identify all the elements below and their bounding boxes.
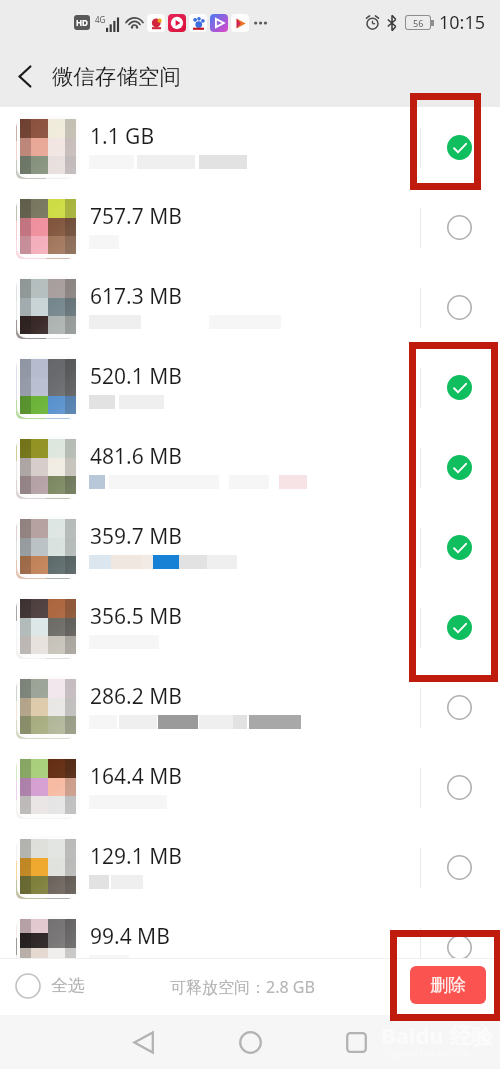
staticText: 4G — [95, 14, 106, 25]
button[interactable]: 757.7 MB — [0, 187, 500, 267]
button[interactable]: Home — [226, 1018, 274, 1066]
staticText: 757.7 MB — [90, 202, 182, 231]
button[interactable]: 删除 — [410, 966, 486, 1004]
staticText: 可释放空间：2.8 GB — [170, 976, 315, 998]
staticText: 微信存储空间 — [52, 63, 181, 90]
staticText: 1.1 GB — [90, 122, 155, 151]
button[interactable]: Not selected — [447, 775, 472, 800]
staticText: Baidu 经验 — [381, 1020, 494, 1050]
staticText: 359.7 MB — [90, 522, 182, 551]
staticText: 356.5 MB — [90, 602, 182, 631]
staticText: 481.6 MB — [90, 442, 182, 471]
staticText: 129.1 MB — [90, 842, 182, 871]
button[interactable]: Not selected — [447, 295, 472, 320]
button[interactable]: Recents — [332, 1018, 380, 1066]
staticText: 10:15 — [439, 10, 486, 35]
button[interactable]: 481.6 MB — [0, 427, 500, 507]
staticText: 全选 — [51, 975, 85, 996]
button[interactable]: 164.4 MB — [0, 747, 500, 827]
button[interactable]: Selected — [447, 455, 472, 480]
staticText: 164.4 MB — [90, 762, 182, 791]
button[interactable]: 129.1 MB — [0, 827, 500, 907]
staticText: 520.1 MB — [90, 362, 182, 391]
button[interactable]: Not selected — [447, 855, 472, 880]
button[interactable]: Not selected — [447, 695, 472, 720]
staticText: 删除 — [430, 974, 466, 997]
button[interactable]: 617.3 MB — [0, 267, 500, 347]
button[interactable]: Back — [119, 1018, 167, 1066]
button[interactable]: 359.7 MB — [0, 507, 500, 587]
button[interactable]: Not selected — [447, 215, 472, 240]
button[interactable]: 520.1 MB — [0, 347, 500, 427]
staticText: 617.3 MB — [90, 282, 182, 311]
button[interactable]: 286.2 MB — [0, 667, 500, 747]
staticText: 99.4 MB — [90, 922, 170, 951]
button[interactable]: Selected — [447, 375, 472, 400]
button[interactable]: 全选 — [15, 972, 95, 999]
button[interactable]: Selected — [447, 135, 472, 160]
button[interactable]: 356.5 MB — [0, 587, 500, 667]
button[interactable]: Back — [0, 45, 50, 107]
button[interactable]: 99.4 MB — [0, 907, 500, 958]
staticText: HD — [76, 17, 88, 28]
button[interactable]: Selected — [447, 535, 472, 560]
button[interactable]: Not selected — [447, 935, 472, 958]
button[interactable]: 1.1 GB — [0, 107, 500, 187]
staticText: 56 — [413, 17, 424, 29]
staticText: 286.2 MB — [90, 682, 182, 711]
button[interactable]: Selected — [447, 615, 472, 640]
